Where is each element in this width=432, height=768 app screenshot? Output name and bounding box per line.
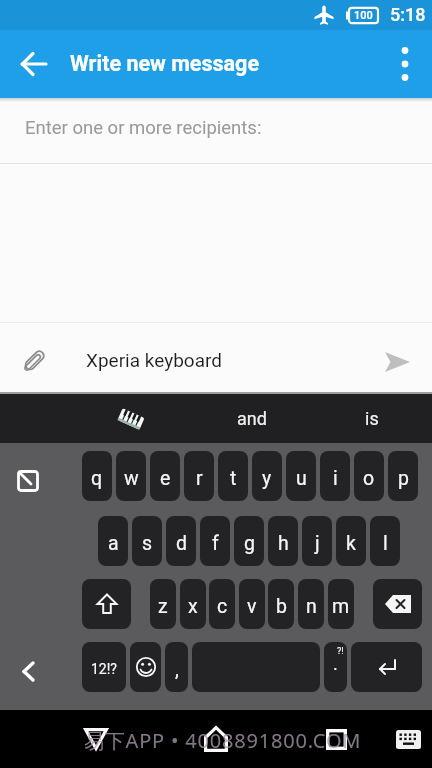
staticText: e bbox=[160, 467, 171, 490]
button[interactable] bbox=[6, 459, 50, 503]
staticText: i bbox=[333, 467, 338, 490]
staticText: ?! bbox=[337, 646, 344, 657]
staticText: Xperia keyboard bbox=[86, 349, 222, 371]
button[interactable]: g bbox=[234, 516, 264, 566]
button[interactable]: r bbox=[184, 451, 214, 501]
button[interactable]: i bbox=[320, 451, 350, 501]
button[interactable] bbox=[376, 346, 418, 378]
staticText: 12!? bbox=[91, 661, 117, 677]
staticText: k bbox=[346, 532, 356, 555]
button[interactable]: o bbox=[354, 451, 384, 501]
button[interactable]: m bbox=[328, 579, 354, 629]
button[interactable]: is bbox=[337, 394, 407, 443]
button[interactable]: 12!? bbox=[82, 642, 126, 692]
staticText: p bbox=[398, 467, 409, 490]
staticText: , bbox=[175, 658, 179, 681]
staticText: n bbox=[306, 595, 317, 618]
staticText: s bbox=[142, 532, 153, 555]
button[interactable]: u bbox=[286, 451, 316, 501]
button[interactable]: h bbox=[268, 516, 298, 566]
staticText: Enter one or more recipients: bbox=[25, 117, 262, 139]
button[interactable]: f bbox=[200, 516, 230, 566]
button[interactable]: t bbox=[218, 451, 248, 501]
button[interactable]: l bbox=[370, 516, 400, 566]
button[interactable]: q bbox=[82, 451, 112, 501]
staticText: 100 bbox=[354, 9, 373, 22]
staticText: v bbox=[247, 595, 257, 618]
staticText: is bbox=[365, 408, 379, 429]
button[interactable]: and bbox=[217, 394, 287, 443]
button[interactable]: ?! bbox=[324, 642, 347, 692]
staticText: 易下APP • 4008891800.COM bbox=[84, 727, 362, 754]
staticText: Write new message bbox=[70, 51, 259, 76]
button[interactable] bbox=[373, 579, 422, 629]
staticText: b bbox=[276, 595, 287, 618]
button[interactable]: Enter one or more recipients: bbox=[0, 98, 432, 163]
staticText: u bbox=[296, 467, 307, 490]
staticText: w bbox=[124, 467, 139, 490]
button[interactable]: z bbox=[150, 579, 176, 629]
button[interactable]: e bbox=[150, 451, 180, 501]
button[interactable] bbox=[14, 341, 54, 381]
button[interactable] bbox=[8, 651, 48, 691]
button[interactable] bbox=[194, 717, 238, 761]
staticText: f bbox=[212, 532, 219, 555]
button[interactable]: d bbox=[166, 516, 196, 566]
button[interactable]: j bbox=[302, 516, 332, 566]
staticText: r bbox=[196, 467, 203, 490]
staticText: j bbox=[315, 532, 320, 555]
staticText: q bbox=[91, 467, 103, 490]
button[interactable] bbox=[82, 579, 131, 629]
staticText: g bbox=[244, 532, 255, 555]
button[interactable]: v bbox=[239, 579, 265, 629]
staticText: z bbox=[158, 595, 168, 618]
button[interactable]: p bbox=[388, 451, 418, 501]
staticText: m bbox=[332, 595, 350, 618]
button[interactable] bbox=[192, 642, 320, 692]
staticText: h bbox=[278, 532, 289, 555]
button[interactable] bbox=[314, 717, 358, 761]
staticText: l bbox=[383, 532, 388, 555]
button[interactable]: x bbox=[180, 579, 206, 629]
button[interactable]: , bbox=[165, 642, 188, 692]
button[interactable]: y bbox=[252, 451, 282, 501]
button[interactable]: s bbox=[132, 516, 162, 566]
button[interactable] bbox=[386, 44, 424, 84]
button[interactable]: a bbox=[98, 516, 128, 566]
staticText: 5:18 bbox=[390, 4, 426, 25]
staticText: d bbox=[176, 532, 187, 555]
button[interactable] bbox=[14, 44, 54, 84]
button[interactable] bbox=[96, 394, 166, 443]
staticText: and bbox=[237, 408, 267, 429]
staticText: . bbox=[333, 653, 338, 674]
staticText: c bbox=[217, 595, 228, 618]
staticText: o bbox=[363, 467, 375, 490]
button[interactable] bbox=[351, 642, 422, 692]
staticText: t bbox=[230, 467, 237, 490]
button[interactable]: n bbox=[298, 579, 324, 629]
button[interactable]: c bbox=[209, 579, 235, 629]
staticText: a bbox=[108, 532, 119, 555]
button[interactable]: b bbox=[268, 579, 294, 629]
button[interactable] bbox=[130, 642, 161, 692]
button[interactable] bbox=[390, 720, 426, 758]
staticText: x bbox=[188, 595, 198, 618]
button[interactable] bbox=[74, 717, 118, 761]
staticText: y bbox=[262, 467, 272, 490]
button[interactable]: k bbox=[336, 516, 366, 566]
button[interactable]: w bbox=[116, 451, 146, 501]
